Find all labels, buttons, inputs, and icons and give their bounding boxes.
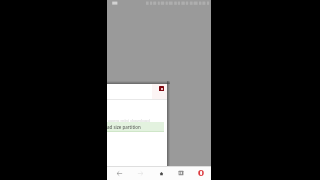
button[interactable]: ad size partition <box>107 122 164 132</box>
button[interactable]: Site icon <box>159 86 164 91</box>
button[interactable]: Speed dial <box>171 166 191 180</box>
button[interactable]: Home <box>151 166 171 180</box>
staticText: ad size partition <box>107 124 141 130</box>
staticText: opera mini download <box>108 118 150 124</box>
button[interactable]: Opera menu <box>191 166 211 180</box>
button[interactable]: Back <box>109 166 130 180</box>
button[interactable]: Forward <box>130 166 151 180</box>
